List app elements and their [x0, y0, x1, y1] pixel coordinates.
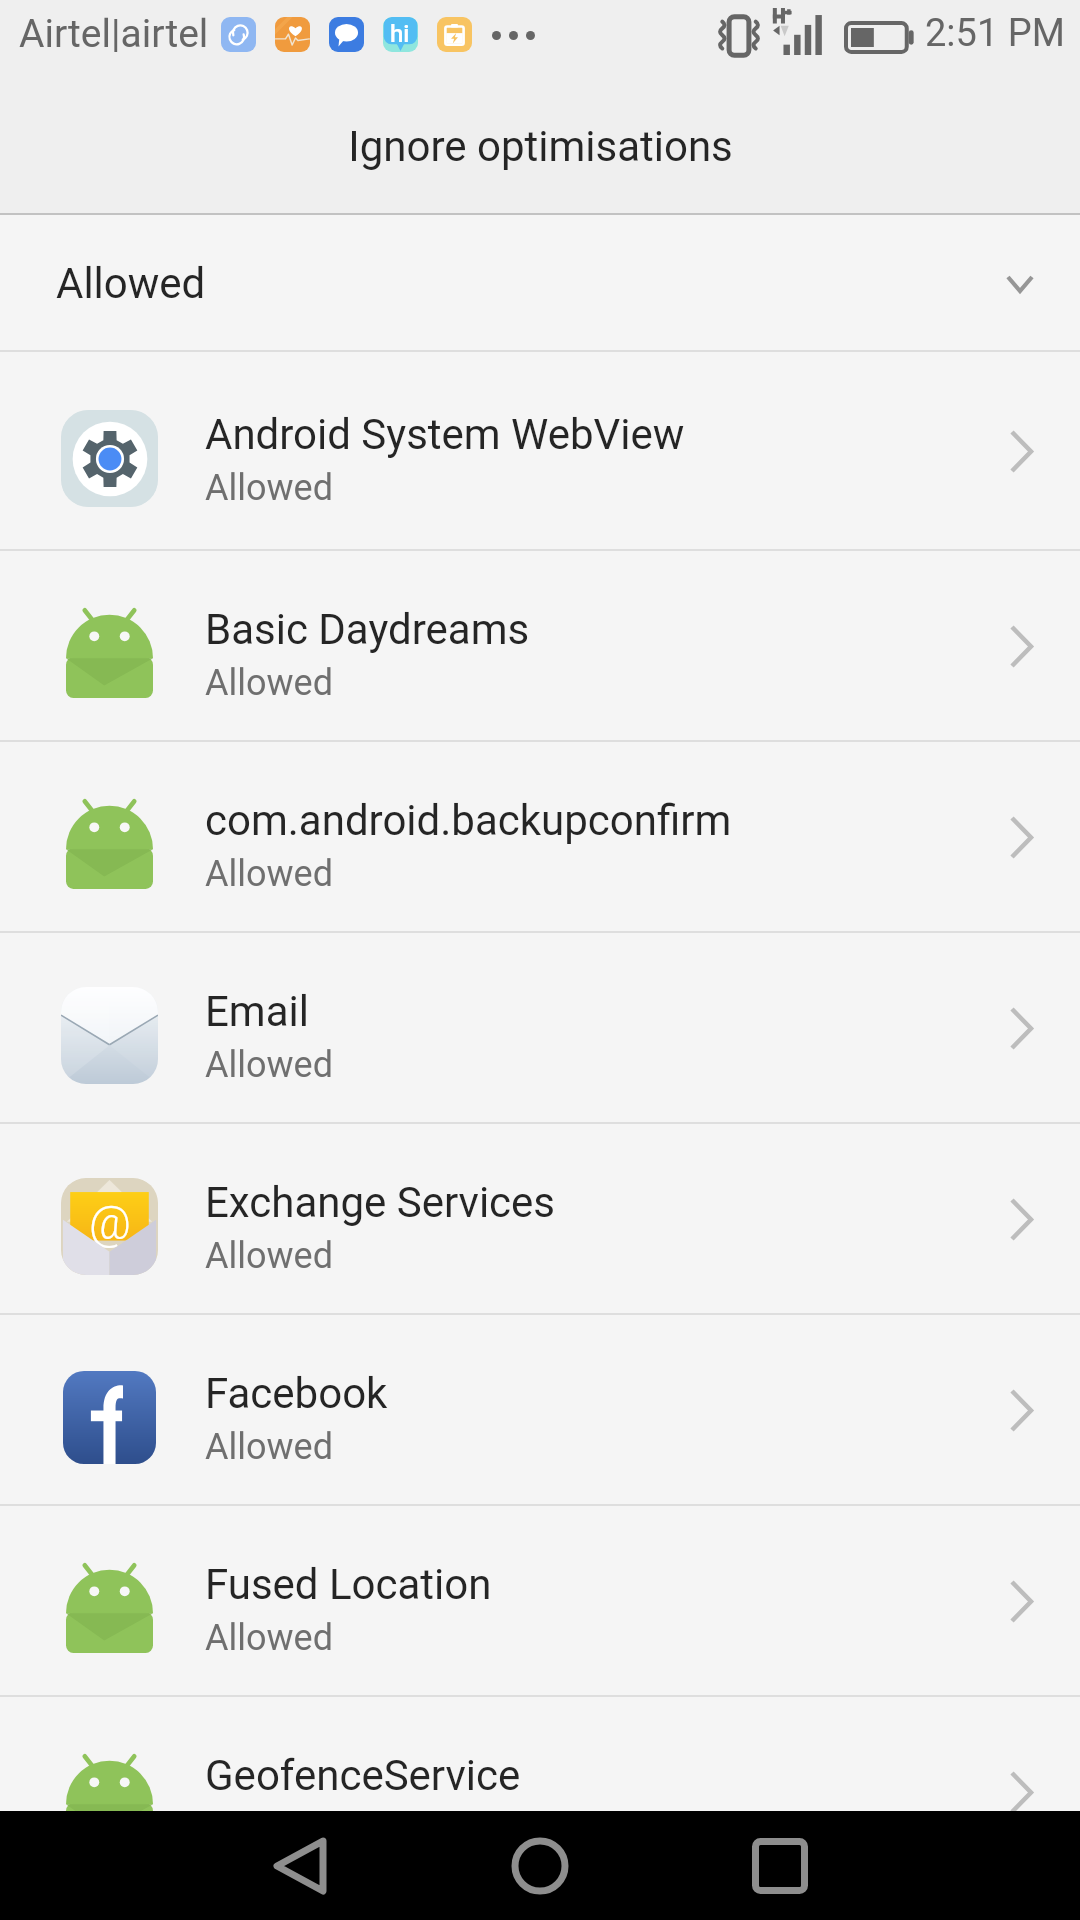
- button[interactable]: Facebook: [0, 1315, 1080, 1506]
- button[interactable]: Back: [220, 1811, 380, 1920]
- button[interactable]: Android System WebView: [0, 352, 1080, 551]
- button[interactable]: GeofenceService: [0, 1697, 1080, 1888]
- staticText: Allowed: [205, 1808, 333, 1850]
- staticText: Exchange Services: [205, 1178, 556, 1227]
- staticText: @: [89, 1196, 132, 1250]
- staticText: Allowed: [56, 259, 206, 308]
- button[interactable]: Allowed group, collapse: [0, 215, 1080, 352]
- staticText: Fused Location: [205, 1560, 492, 1609]
- staticText: Allowed: [205, 662, 333, 704]
- staticText: 2:51 PM: [925, 11, 1065, 56]
- button[interactable]: com.android.backupconfirm: [0, 742, 1080, 933]
- button[interactable]: Recents: [700, 1811, 860, 1920]
- staticText: Android System WebView: [205, 410, 685, 459]
- staticText: Email: [205, 987, 309, 1036]
- button[interactable]: Home: [460, 1811, 620, 1920]
- staticText: Allowed: [205, 1617, 333, 1659]
- button[interactable]: Email: [0, 933, 1080, 1124]
- staticText: Allowed: [205, 467, 333, 509]
- staticText: Ignore optimisations: [348, 122, 733, 171]
- staticText: Allowed: [205, 1235, 333, 1277]
- staticText: Airtel|airtel: [19, 11, 209, 57]
- staticText: Basic Daydreams: [205, 605, 530, 654]
- button[interactable]: Basic Daydreams: [0, 551, 1080, 742]
- staticText: GeofenceService: [205, 1751, 521, 1800]
- button[interactable]: Fused Location: [0, 1506, 1080, 1697]
- staticText: Facebook: [205, 1369, 388, 1418]
- staticText: Allowed: [205, 1044, 333, 1086]
- staticText: Allowed: [205, 853, 333, 895]
- staticText: com.android.backupconfirm: [205, 796, 732, 845]
- button[interactable]: @: [0, 1124, 1080, 1315]
- staticText: Allowed: [205, 1426, 333, 1468]
- staticText: hi: [390, 20, 410, 48]
